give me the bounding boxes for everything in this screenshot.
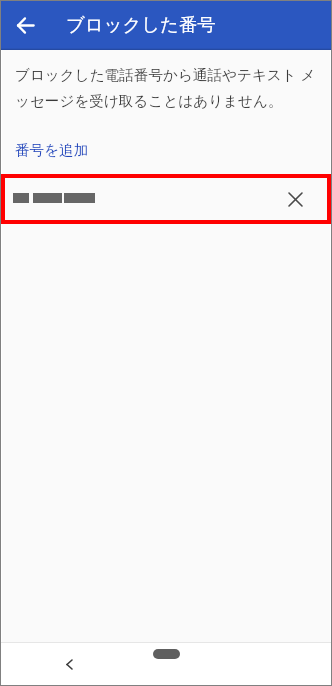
staticText: 番号を追加 (15, 141, 89, 159)
button[interactable]: ホーム (136, 642, 196, 685)
staticText: ブロックした電話番号から通話やテキスト メ ッセージを受け取ることはありません。 (15, 64, 316, 110)
button[interactable]: 戻る (1, 2, 49, 50)
button[interactable]: 番号を追加 (1, 137, 103, 163)
staticText: ブロックした番号 (66, 13, 216, 36)
button[interactable]: 戻る (47, 642, 91, 685)
button[interactable]: 削除 (275, 179, 315, 219)
